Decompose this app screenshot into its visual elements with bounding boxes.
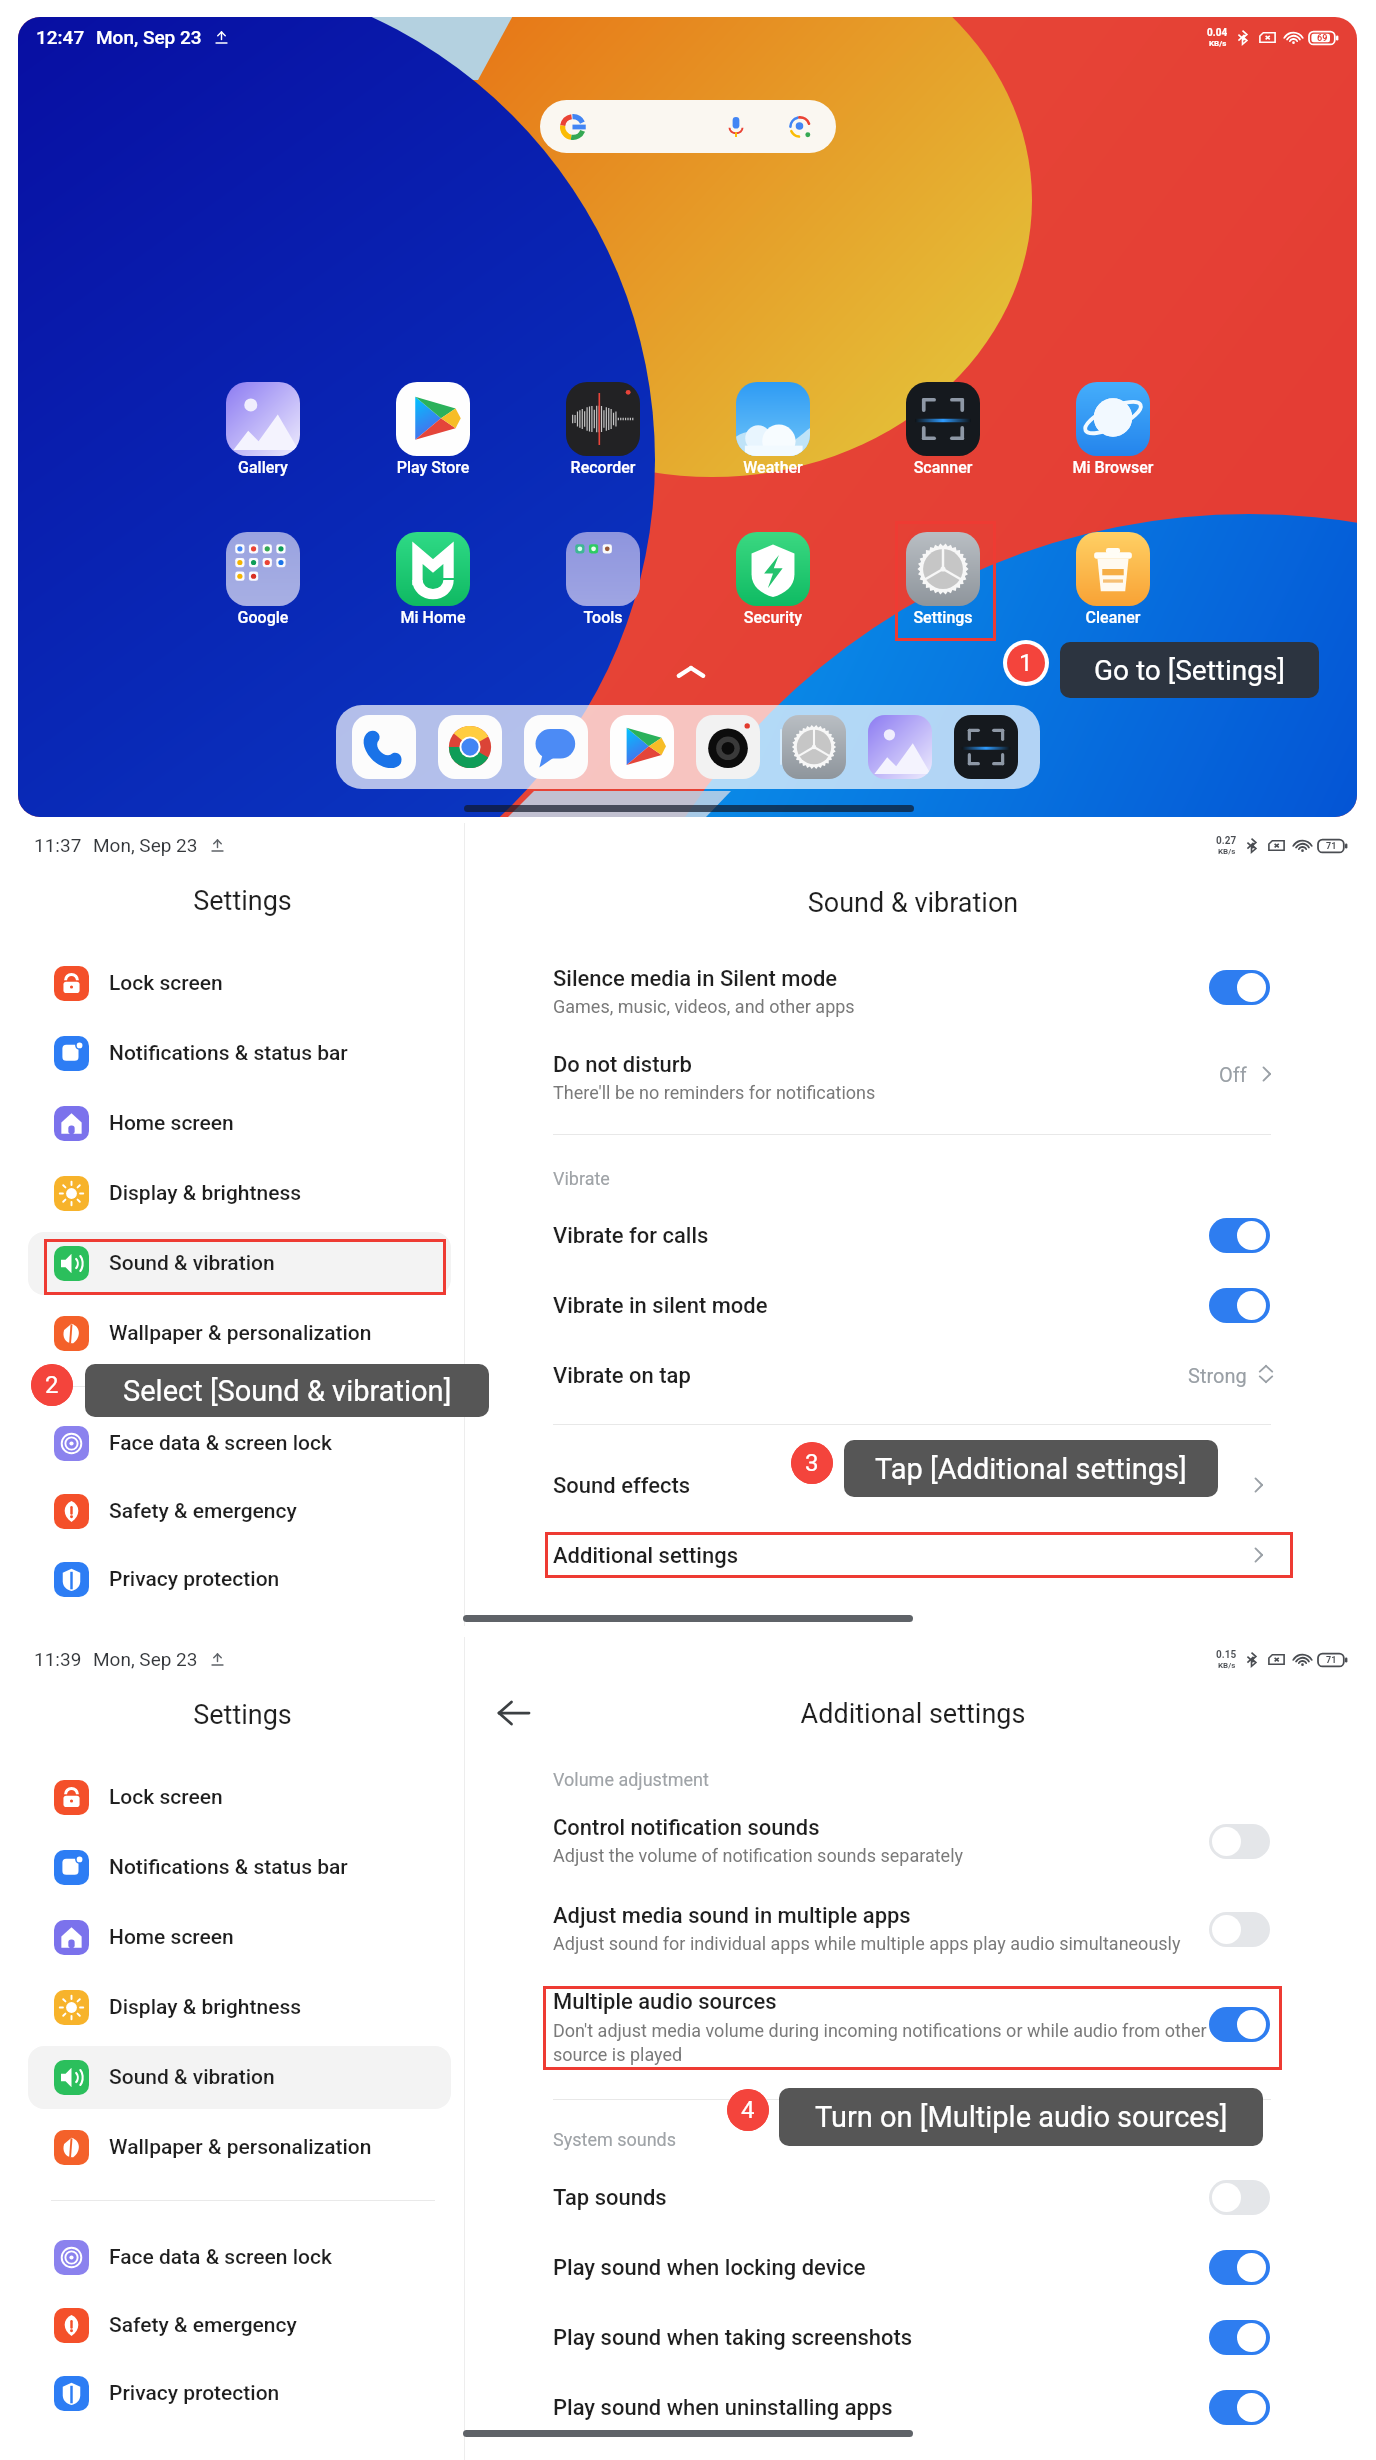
button[interactable]: messages [524,715,588,779]
button[interactable]: Multiple audio sources [545,1986,1293,2070]
button[interactable]: Toggle [1209,2007,1270,2042]
button[interactable]: gallery [868,715,932,779]
button[interactable]: play [610,715,674,779]
button[interactable]: Toggle [1209,2390,1270,2425]
button[interactable]: Settings [887,532,999,627]
staticText: Additional settings [465,1698,1361,1730]
button[interactable]: Toggle [1209,1288,1270,1323]
button[interactable]: Lock screen [28,952,451,1015]
button[interactable]: Control notification sounds [545,1803,1293,1881]
button[interactable]: Play sound when locking device [545,2239,1293,2297]
button[interactable]: camera [696,715,760,779]
button[interactable]: Vibrate for calls [545,1207,1293,1265]
button[interactable]: Additional settings [545,1529,1293,1581]
staticText: Home screen [109,1925,234,1950]
button[interactable]: Recorder [547,382,659,477]
staticText: Mon, Sep 23 [93,834,198,856]
button[interactable]: Play Store [377,382,489,477]
button[interactable]: Cleaner [1057,532,1169,627]
staticText: Play sound when taking screenshots [553,2325,913,2351]
button[interactable]: Scanner [887,382,999,477]
staticText: Face data & screen lock [109,1431,332,1456]
staticText: Recorder [547,458,659,477]
button[interactable]: scanner [954,715,1018,779]
button[interactable]: Do not disturb [545,1039,1293,1117]
staticText: Sound effects [553,1473,691,1499]
button[interactable]: Safety & emergency [28,1480,451,1543]
button[interactable]: Gallery [207,382,319,477]
button[interactable]: Toggle [1209,1218,1270,1253]
button[interactable]: Vibrate on tap [545,1347,1293,1405]
staticText: Play Store [377,458,489,477]
button[interactable]: phone [352,715,416,779]
staticText: Tap [Additional settings] [875,1452,1187,1486]
button[interactable]: Lock screen [28,1766,451,1829]
button[interactable]: Privacy protection [28,2362,451,2425]
button[interactable]: Face data & screen lock [28,2226,451,2289]
button[interactable]: Play sound when uninstalling apps [545,2379,1293,2437]
staticText: 71 [1326,841,1337,852]
staticText: Silence media in Silent mode [553,966,838,992]
staticText: Games, music, videos, and other apps [553,996,855,1017]
button[interactable]: Adjust media sound in multiple apps [545,1891,1293,1969]
button[interactable]: Tap sounds [545,2169,1293,2227]
button[interactable]: chrome [438,715,502,779]
staticText: Select [Sound & vibration] [123,1374,452,1408]
staticText: 0.27 [1216,835,1237,847]
staticText: 2 [45,1371,59,1399]
staticText: Safety & emergency [109,2313,297,2338]
staticText: Sound & vibration [109,2065,275,2090]
staticText: KB/s [1209,39,1227,48]
button[interactable]: Back [488,1688,538,1738]
button[interactable]: Google search [540,100,836,153]
button[interactable]: Notifications & status bar [28,1022,451,1085]
button[interactable]: Display & brightness [28,1162,451,1225]
staticText: Control notification sounds [553,1815,820,1841]
button[interactable]: Toggle [1209,970,1270,1005]
button[interactable]: Face data & screen lock [28,1412,451,1475]
button[interactable]: Open app drawer [673,655,709,691]
button[interactable]: Toggle [1209,1912,1270,1947]
button[interactable]: Mi Browser [1057,382,1169,477]
staticText: Notifications & status bar [109,1041,348,1066]
staticText: Mi Browser [1057,458,1169,477]
button[interactable]: Sound & vibration [28,1232,451,1295]
button[interactable]: Vibrate in silent mode [545,1277,1293,1335]
button[interactable]: Wallpaper & personalization [28,1302,451,1365]
button[interactable]: Wallpaper & personalization [28,2116,451,2179]
button[interactable]: Toggle [1209,2320,1270,2355]
button[interactable]: Silence media in Silent mode [545,953,1293,1031]
button[interactable]: Weather [717,382,829,477]
staticText: Lock screen [109,971,223,996]
button[interactable]: Sound effects [545,1457,1293,1515]
button[interactable]: Tools [547,532,659,627]
button[interactable]: Home screen [28,1092,451,1155]
button[interactable]: Sound & vibration [28,2046,451,2109]
staticText: KB/s [1218,847,1236,856]
button[interactable]: Display & brightness [28,1976,451,2039]
staticText: There'll be no reminders for notificatio… [553,1082,876,1103]
staticText: Wallpaper & personalization [109,1321,372,1346]
staticText: Vibrate for calls [553,1223,709,1249]
staticText: Settings [25,1699,460,1731]
button[interactable]: Google [207,532,319,627]
staticText: Tools [547,608,659,627]
button[interactable]: Toggle [1209,1824,1270,1859]
button[interactable]: Mi Home [377,532,489,627]
button[interactable]: Privacy protection [28,1548,451,1611]
staticText: Strong [1188,1364,1247,1387]
staticText: Multiple audio sources [553,1989,777,2015]
button[interactable]: Security [717,532,829,627]
staticText: Display & brightness [109,1181,302,1206]
button[interactable]: Notifications & status bar [28,1836,451,1899]
staticText: 11:39 [34,1648,82,1670]
staticText: Lock screen [109,1785,223,1810]
button[interactable]: settings [782,715,846,779]
button[interactable]: Safety & emergency [28,2294,451,2357]
staticText: Adjust media sound in multiple apps [553,1903,911,1929]
button[interactable]: Toggle [1209,2180,1270,2215]
button[interactable]: Play sound when taking screenshots [545,2309,1293,2367]
button[interactable]: Toggle [1209,2250,1270,2285]
staticText: Vibrate [553,1168,610,1189]
button[interactable]: Home screen [28,1906,451,1969]
